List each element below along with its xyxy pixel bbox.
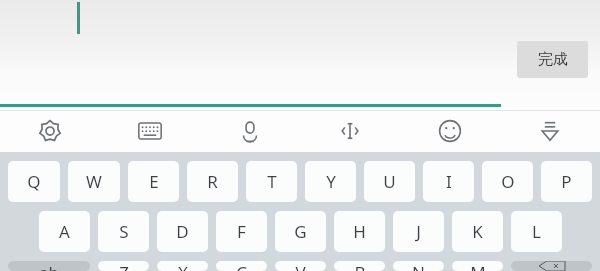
staticText: ab xyxy=(39,261,59,271)
button[interactable]: J xyxy=(393,211,444,252)
staticText: T xyxy=(267,170,277,193)
button[interactable]: Settings xyxy=(0,110,100,152)
button[interactable]: Keyboard layout xyxy=(100,110,200,152)
button[interactable]: ab xyxy=(8,261,90,271)
button[interactable]: D xyxy=(157,211,208,252)
staticText: X xyxy=(178,261,188,271)
staticText: J xyxy=(416,220,421,243)
button[interactable]: Voice input xyxy=(200,110,300,152)
button[interactable]: R xyxy=(187,161,238,202)
button[interactable]: V xyxy=(275,261,326,271)
button[interactable]: U xyxy=(364,161,415,202)
staticText: H xyxy=(353,220,366,243)
button[interactable]: 完成 xyxy=(517,41,588,78)
staticText: Z xyxy=(119,261,129,271)
staticText: L xyxy=(532,220,541,243)
staticText: M xyxy=(470,261,486,271)
staticText: Y xyxy=(326,170,336,193)
staticText: N xyxy=(412,261,425,271)
button[interactable]: W xyxy=(68,161,120,202)
button[interactable]: H xyxy=(334,211,385,252)
button[interactable]: P xyxy=(541,161,592,202)
button[interactable]: Q xyxy=(8,161,60,202)
button[interactable]: B xyxy=(334,261,385,271)
button[interactable]: X xyxy=(157,261,208,271)
button[interactable]: E xyxy=(128,161,179,202)
button[interactable]: K xyxy=(452,211,503,252)
staticText: D xyxy=(176,220,189,243)
staticText: I xyxy=(446,170,452,193)
staticText: U xyxy=(383,170,396,193)
button[interactable]: Z xyxy=(98,261,149,271)
staticText: E xyxy=(149,170,159,193)
staticText: A xyxy=(59,220,70,243)
button[interactable]: Move cursor xyxy=(300,110,400,152)
staticText: G xyxy=(294,220,307,243)
button[interactable]: Emoji xyxy=(400,110,500,152)
staticText: W xyxy=(86,170,102,193)
button[interactable]: F xyxy=(216,211,267,252)
button[interactable]: I xyxy=(423,161,474,202)
button[interactable]: A xyxy=(39,211,90,252)
button[interactable]: S xyxy=(98,211,149,252)
button[interactable]: G xyxy=(275,211,326,252)
staticText: 完成 xyxy=(538,50,568,69)
staticText: P xyxy=(561,170,572,193)
button[interactable]: C xyxy=(216,261,267,271)
staticText: O xyxy=(501,170,515,193)
staticText: B xyxy=(354,261,366,271)
staticText: F xyxy=(237,220,246,243)
staticText: R xyxy=(207,170,218,193)
staticText: V xyxy=(295,261,306,271)
button[interactable]: Hide keyboard xyxy=(500,110,600,152)
staticText: K xyxy=(472,220,483,243)
button[interactable]: L xyxy=(511,211,562,252)
staticText: Q xyxy=(27,170,41,193)
staticText: S xyxy=(119,220,129,243)
button[interactable]: O xyxy=(482,161,533,202)
button[interactable]: Backspace xyxy=(511,261,592,271)
button[interactable]: T xyxy=(246,161,297,202)
button[interactable]: M xyxy=(452,261,503,271)
button[interactable]: N xyxy=(393,261,444,271)
button[interactable]: Y xyxy=(305,161,356,202)
staticText: C xyxy=(236,261,247,271)
